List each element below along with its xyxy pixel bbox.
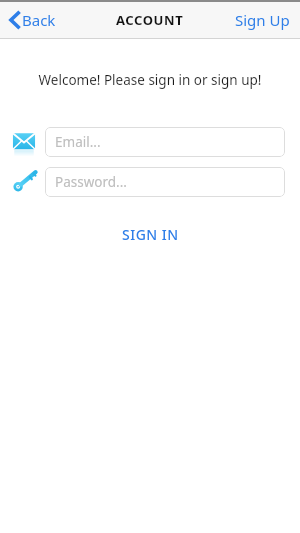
other: Password bbox=[12, 170, 36, 194]
other: Email bbox=[12, 130, 36, 154]
staticText: Back bbox=[22, 10, 56, 30]
button[interactable]: Back bbox=[6, 6, 60, 34]
staticText: Password... bbox=[55, 173, 127, 191]
staticText: SIGN IN bbox=[122, 225, 179, 244]
staticText: ACCOUNT bbox=[116, 11, 184, 29]
button[interactable]: Password... bbox=[45, 167, 285, 197]
button[interactable]: Email... bbox=[45, 127, 285, 157]
staticText: Welcome! Please sign in or sign up! bbox=[0, 71, 300, 89]
button[interactable]: Sign Up bbox=[231, 6, 294, 34]
button[interactable]: SIGN IN bbox=[0, 219, 300, 250]
staticText: Sign Up bbox=[235, 10, 290, 30]
staticText: Email... bbox=[55, 133, 101, 151]
